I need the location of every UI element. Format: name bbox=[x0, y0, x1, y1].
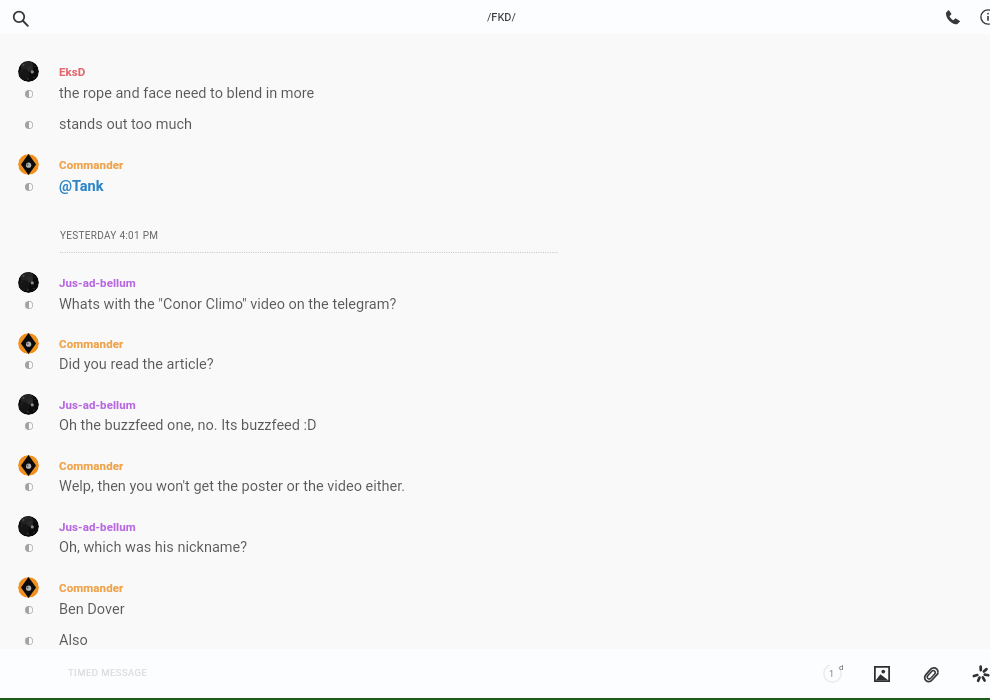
button[interactable]: More options bbox=[967, 660, 990, 688]
button[interactable]: Welp, then you won't get the poster or t… bbox=[0, 475, 990, 496]
button[interactable]: Commander profile picture bbox=[18, 577, 39, 598]
button[interactable]: Also bbox=[0, 629, 990, 650]
button[interactable]: Attach file bbox=[917, 660, 945, 688]
button[interactable]: Jus-ad-bellum profile picture bbox=[18, 516, 39, 537]
staticText: Commander bbox=[59, 581, 124, 594]
button[interactable]: Jus-ad-bellum profile picture bbox=[0, 270, 990, 291]
button[interactable]: Jus-ad-bellum profile picture bbox=[18, 272, 39, 293]
button[interactable]: Whats with the "Conor Climo" video on th… bbox=[0, 293, 990, 314]
staticText: Jus-ad-bellum bbox=[59, 520, 136, 533]
button[interactable]: Commander profile picture bbox=[18, 455, 39, 476]
button[interactable]: Commander profile picture bbox=[0, 453, 990, 474]
button[interactable]: Commander profile picture bbox=[18, 154, 39, 175]
button[interactable]: Info bbox=[973, 2, 990, 32]
staticText: Did you read the article? bbox=[59, 356, 214, 373]
staticText: Also bbox=[59, 632, 88, 649]
button[interactable]: Did you read the article? bbox=[0, 353, 990, 374]
button[interactable]: Commander profile picture bbox=[18, 333, 39, 354]
button[interactable]: Commander profile picture bbox=[0, 152, 990, 173]
button[interactable]: Commander profile picture bbox=[0, 331, 990, 352]
button[interactable]: Oh the buzzfeed one, no. Its buzzfeed :D bbox=[0, 414, 990, 435]
button[interactable]: Timer one day bbox=[817, 658, 847, 688]
staticText: Ben Dover bbox=[59, 601, 125, 618]
staticText: the rope and face need to blend in more bbox=[59, 85, 315, 102]
button[interactable]: Jus-ad-bellum profile picture bbox=[18, 394, 39, 415]
button[interactable]: Oh, which was his nickname? bbox=[0, 536, 990, 557]
staticText: Commander bbox=[59, 158, 124, 171]
staticText: Welp, then you won't get the poster or t… bbox=[59, 478, 406, 495]
staticText: stands out too much bbox=[59, 116, 193, 133]
staticText: TIMED MESSAGE bbox=[68, 667, 148, 678]
button[interactable]: Call bbox=[938, 2, 968, 32]
button[interactable]: Photo bbox=[868, 660, 896, 688]
staticText: Whats with the "Conor Climo" video on th… bbox=[59, 296, 397, 313]
staticText: Oh the buzzfeed one, no. Its buzzfeed :D bbox=[59, 417, 317, 434]
staticText: Oh, which was his nickname? bbox=[59, 539, 248, 556]
staticText: EksD bbox=[59, 65, 86, 78]
button[interactable]: YESTERDAY 4:01 PM bbox=[60, 230, 159, 242]
button[interactable]: EksD profile picture bbox=[0, 59, 990, 80]
button[interactable]: Jus-ad-bellum profile picture bbox=[0, 392, 990, 413]
staticText: /FKD/ bbox=[487, 11, 516, 24]
staticText: 1 bbox=[829, 669, 835, 680]
staticText: @Tank bbox=[59, 178, 104, 195]
button[interactable]: Jus-ad-bellum profile picture bbox=[0, 514, 990, 535]
staticText: Jus-ad-bellum bbox=[59, 276, 136, 289]
button[interactable]: Ben Dover bbox=[0, 598, 990, 619]
staticText: Commander bbox=[59, 337, 124, 350]
staticText: Commander bbox=[59, 459, 124, 472]
button[interactable]: @Tank bbox=[0, 175, 990, 196]
button[interactable]: Search bbox=[7, 5, 33, 31]
staticText: d bbox=[839, 663, 844, 672]
button[interactable]: EksD profile picture bbox=[18, 61, 39, 82]
button[interactable]: the rope and face need to blend in more bbox=[0, 82, 990, 103]
staticText: Jus-ad-bellum bbox=[59, 398, 136, 411]
button[interactable]: Commander profile picture bbox=[0, 575, 990, 596]
button[interactable]: stands out too much bbox=[0, 113, 990, 134]
staticText: YESTERDAY 4:01 PM bbox=[60, 230, 159, 242]
